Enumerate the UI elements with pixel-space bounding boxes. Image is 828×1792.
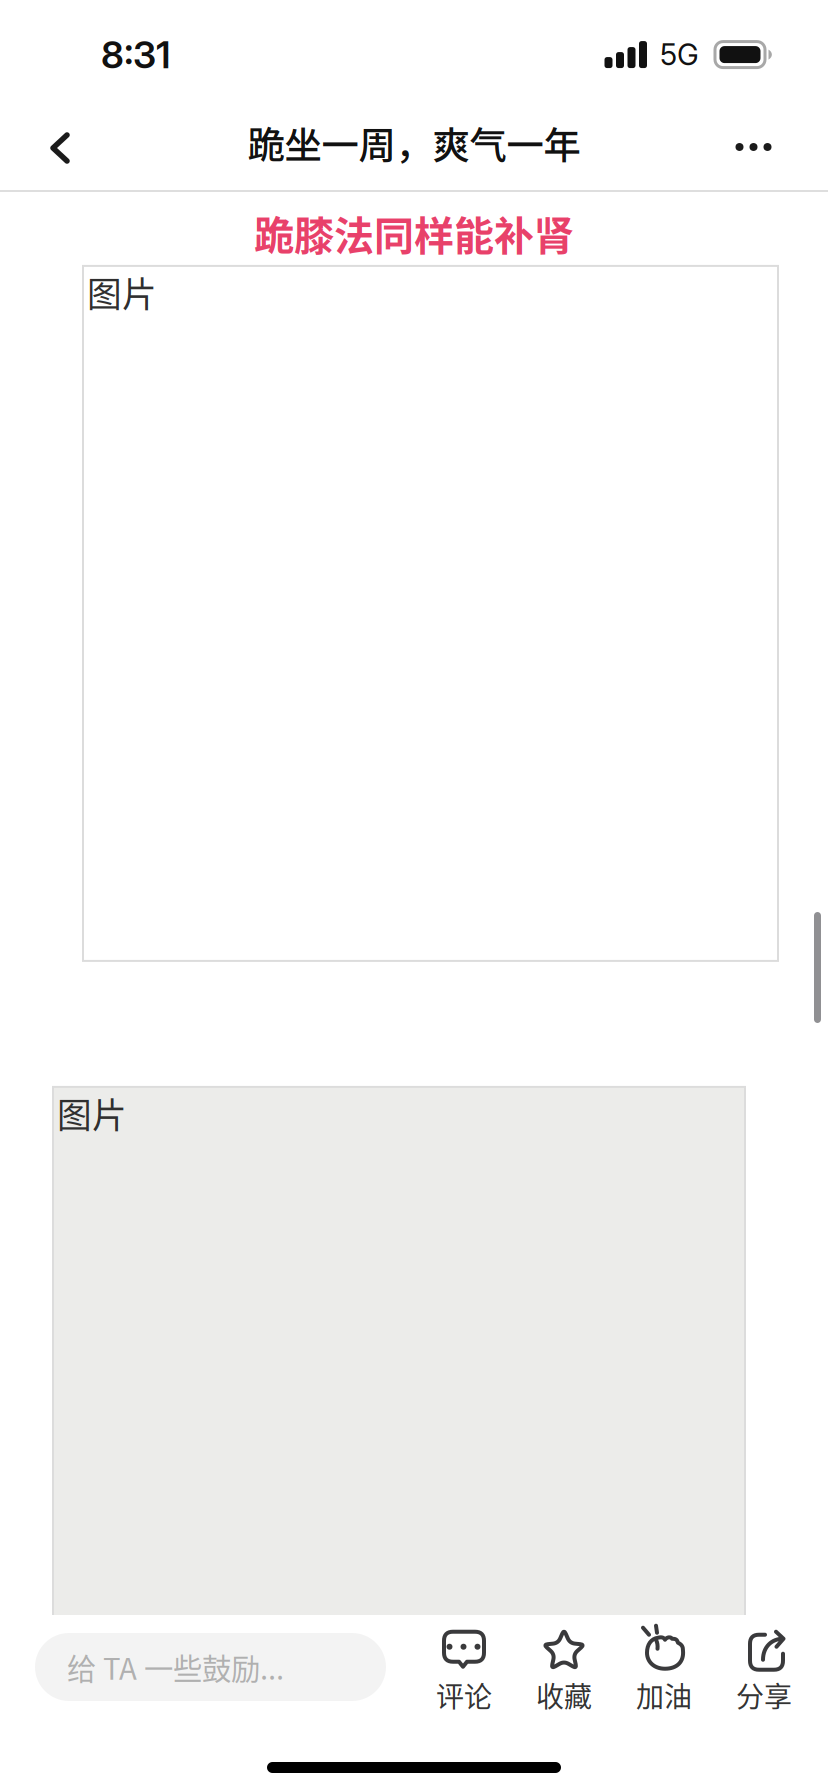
button[interactable]: 更多 bbox=[679, 96, 828, 190]
staticText: 加油 bbox=[636, 1675, 692, 1715]
button[interactable]: 返回 bbox=[0, 96, 120, 190]
staticText: 评论 bbox=[436, 1675, 492, 1715]
button[interactable]: 加油 bbox=[614, 1615, 714, 1719]
staticText: 图片 bbox=[57, 1088, 127, 1138]
staticText: 跪膝法同样能补肾 bbox=[254, 204, 574, 262]
button[interactable]: 评论 bbox=[414, 1615, 514, 1719]
staticText: 给 TA 一些鼓励... bbox=[67, 1646, 284, 1688]
staticText: 8:31 bbox=[101, 32, 171, 77]
button[interactable]: 分享 bbox=[714, 1615, 814, 1719]
button[interactable]: 给 TA 一些鼓励... bbox=[35, 1633, 386, 1701]
staticText: 收藏 bbox=[536, 1675, 592, 1715]
staticText: 分享 bbox=[736, 1675, 792, 1715]
staticText: 5G bbox=[660, 37, 699, 72]
staticText: 跪坐一周，爽气一年 bbox=[247, 116, 580, 170]
button[interactable]: 收藏 bbox=[514, 1615, 614, 1719]
staticText: 图片 bbox=[87, 267, 157, 317]
